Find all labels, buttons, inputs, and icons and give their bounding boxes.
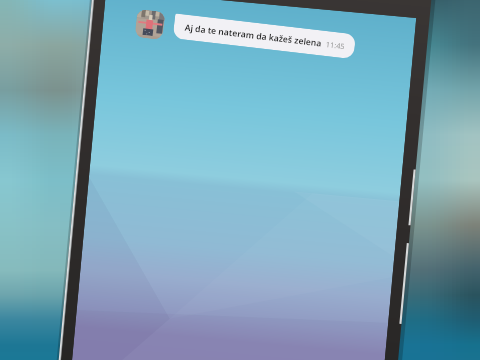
staticText: Aj da te nateram da kažeš zelena <box>184 22 323 49</box>
staticText: 11:45 <box>325 39 345 51</box>
button[interactable]: Aj da te nateram da kažeš zelena <box>172 13 356 59</box>
button[interactable]: Contact avatar <box>134 9 165 40</box>
